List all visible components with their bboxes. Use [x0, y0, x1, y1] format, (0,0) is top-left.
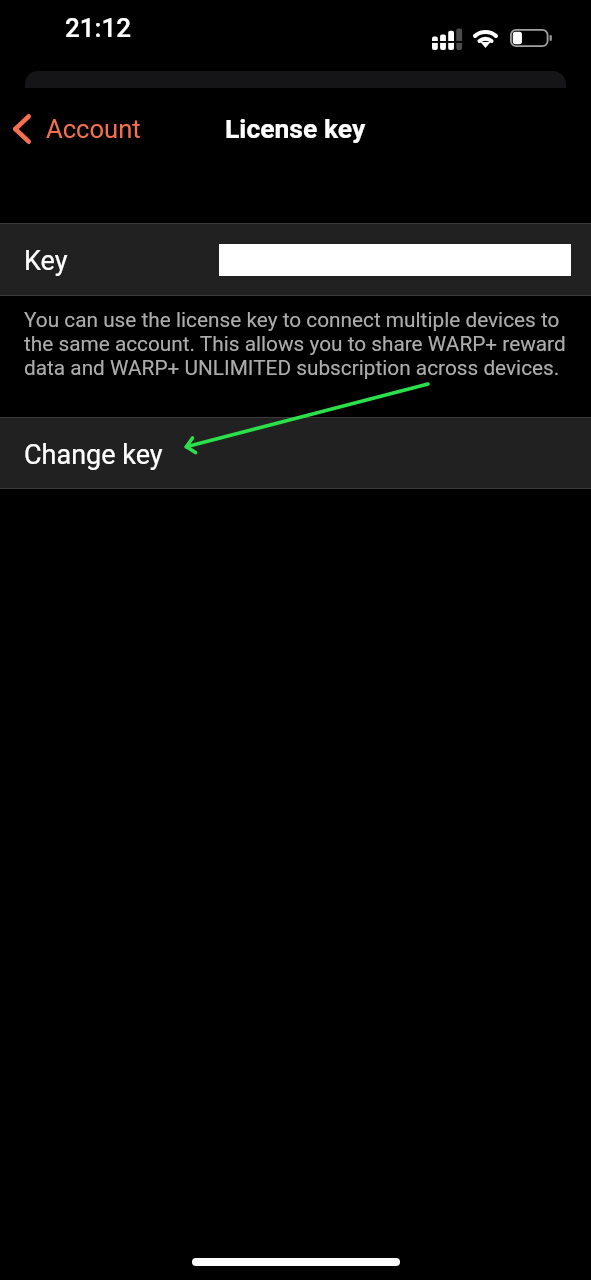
staticText: Change key [24, 439, 163, 471]
button[interactable]: Account [0, 106, 151, 152]
staticText: You can use the license key to connect m… [24, 308, 570, 380]
staticText: License key [225, 113, 366, 144]
staticText: Key [24, 245, 68, 277]
button[interactable]: Change key [0, 417, 591, 489]
staticText: 21:12 [65, 13, 132, 43]
button[interactable]: Key [0, 223, 591, 296]
staticText: Account [46, 114, 141, 144]
